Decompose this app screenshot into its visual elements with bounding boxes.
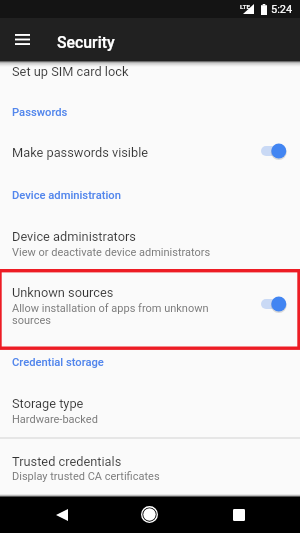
button[interactable] [0,61,300,92]
button[interactable] [0,379,300,437]
staticText: View or deactivate device administrators [12,246,211,259]
button[interactable]: Back [44,497,79,532]
button[interactable]: Home [132,497,167,532]
staticText: LTE [240,3,250,10]
staticText: Set up SIM card lock [12,64,129,79]
button[interactable]: Open navigation menu [8,25,36,53]
button[interactable] [0,269,300,350]
button[interactable] [0,439,300,496]
staticText: Storage type [12,396,84,411]
staticText: Unknown sources [12,285,114,300]
staticText: Device administration [12,189,121,202]
staticText: Credential storage [12,356,104,369]
button[interactable]: Recent apps [221,497,256,532]
staticText: Hardware-backed [12,413,98,426]
staticText: Trusted credentials [12,454,122,469]
button[interactable] [0,212,300,269]
staticText: Device administrators [12,229,136,244]
staticText: 5:24 [271,3,293,16]
staticText: sources [12,314,51,327]
staticText: Display trusted CA certificates [12,470,160,483]
button[interactable] [0,128,300,174]
staticText: Passwords [12,106,68,119]
staticText: Make passwords visible [12,145,149,160]
staticText: Security [57,33,115,52]
staticText: Allow installation of apps from unknown [12,302,209,315]
